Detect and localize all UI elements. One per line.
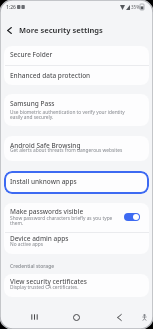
button[interactable] <box>4 94 149 126</box>
staticText: 1:26 <box>6 4 16 11</box>
button[interactable] <box>4 203 149 254</box>
staticText: Display trusted CA certificates. <box>10 284 79 291</box>
staticText: Install unknown apps <box>10 177 77 186</box>
staticText: easily and securely. <box>10 114 54 121</box>
staticText: Secure Folder <box>10 50 53 59</box>
button[interactable] <box>117 314 122 321</box>
staticText: Samsung Pass <box>10 99 55 108</box>
staticText: Credential storage <box>10 263 55 270</box>
staticText: View security certificates <box>10 277 87 286</box>
button[interactable] <box>124 213 140 221</box>
staticText: Device admin apps <box>10 234 69 243</box>
staticText: No active apps <box>10 241 44 248</box>
staticText: Android Safe Browsing <box>10 141 81 150</box>
staticText: 35% <box>131 4 140 10</box>
button[interactable] <box>31 314 38 320</box>
button[interactable] <box>142 314 147 321</box>
button[interactable] <box>4 274 149 297</box>
staticText: Enhanced data protection <box>10 71 91 80</box>
staticText: Get alerts about threats from dangerous … <box>10 147 123 154</box>
button[interactable] <box>4 46 149 85</box>
staticText: Make passwords visible <box>10 207 84 216</box>
button[interactable] <box>4 171 149 194</box>
staticText: Use biometric authentication to verify y… <box>10 109 125 116</box>
button[interactable] <box>7 27 12 34</box>
staticText: More security settings <box>19 25 103 35</box>
button[interactable] <box>73 314 80 321</box>
staticText: Show password characters briefly as you … <box>10 215 113 222</box>
button[interactable] <box>4 136 149 161</box>
staticText: them. <box>10 220 24 227</box>
